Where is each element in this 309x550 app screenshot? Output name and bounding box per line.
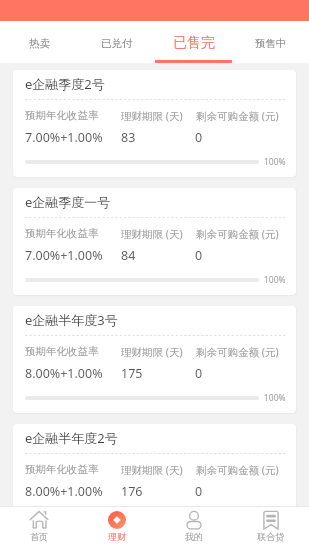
staticText: 理财 [108,531,126,542]
staticText: 0 [195,483,203,500]
staticText: 理财期限 (天) [121,345,183,359]
staticText: 0 [195,247,203,264]
staticText: 7.00%+1.00% [25,247,103,264]
staticText: 预售中 [255,37,287,50]
staticText: 理财期限 (天) [121,227,183,241]
staticText: 剩余可购金额 (元) [196,109,279,123]
staticText: 预期年化收益率 [25,345,99,358]
staticText: 8.00%+1.00% [25,365,103,382]
staticText: 84 [121,247,136,264]
staticText: 剩余可购金额 (元) [196,345,279,359]
staticText: e企融季度一号 [25,193,111,211]
staticText: 7.00%+1.00% [25,129,103,146]
staticText: 100% [264,274,286,286]
staticText: 剩余可购金额 (元) [196,227,279,241]
staticText: 176 [121,483,143,500]
button[interactable]: 热卖 [0,21,78,63]
staticText: 175 [121,365,143,382]
staticText: 理财期限 (天) [121,109,183,123]
staticText: 剩余可购金额 (元) [196,463,279,477]
staticText: 0 [195,365,203,382]
staticText: e企融季度2号 [25,75,105,93]
staticText: 100% [264,510,286,522]
button[interactable]: e企融半年度3号 [13,306,296,413]
staticText: 83 [121,129,136,146]
staticText: 预期年化收益率 [25,227,99,240]
staticText: 100% [264,392,286,404]
staticText: 已售完 [173,34,215,52]
staticText: 联合贷 [257,531,284,542]
staticText: e企融半年度3号 [25,311,118,329]
button[interactable]: 理财 [78,507,155,542]
staticText: 理财期限 (天) [121,463,183,477]
button[interactable]: 已兑付 [78,21,155,63]
staticText: e企融半年度2号 [25,429,118,447]
button[interactable]: 我的 [155,507,232,542]
staticText: 热卖 [29,37,50,50]
button[interactable]: 联合贷 [232,507,309,542]
button[interactable]: e企融季度2号 [13,70,296,177]
staticText: 我的 [185,531,203,542]
button[interactable]: 预售中 [232,21,309,63]
button[interactable]: 已售完 [155,21,232,63]
button[interactable]: e企融半年度2号 [13,424,296,531]
staticText: 8.00%+1.00% [25,483,103,500]
button[interactable]: 首页 [0,507,78,542]
staticText: 预期年化收益率 [25,109,99,122]
staticText: 预期年化收益率 [25,463,99,476]
staticText: 已兑付 [101,37,133,50]
staticText: 0 [195,129,203,146]
button[interactable]: e企融季度一号 [13,188,296,295]
staticText: 100% [264,156,286,168]
staticText: 首页 [30,531,48,542]
